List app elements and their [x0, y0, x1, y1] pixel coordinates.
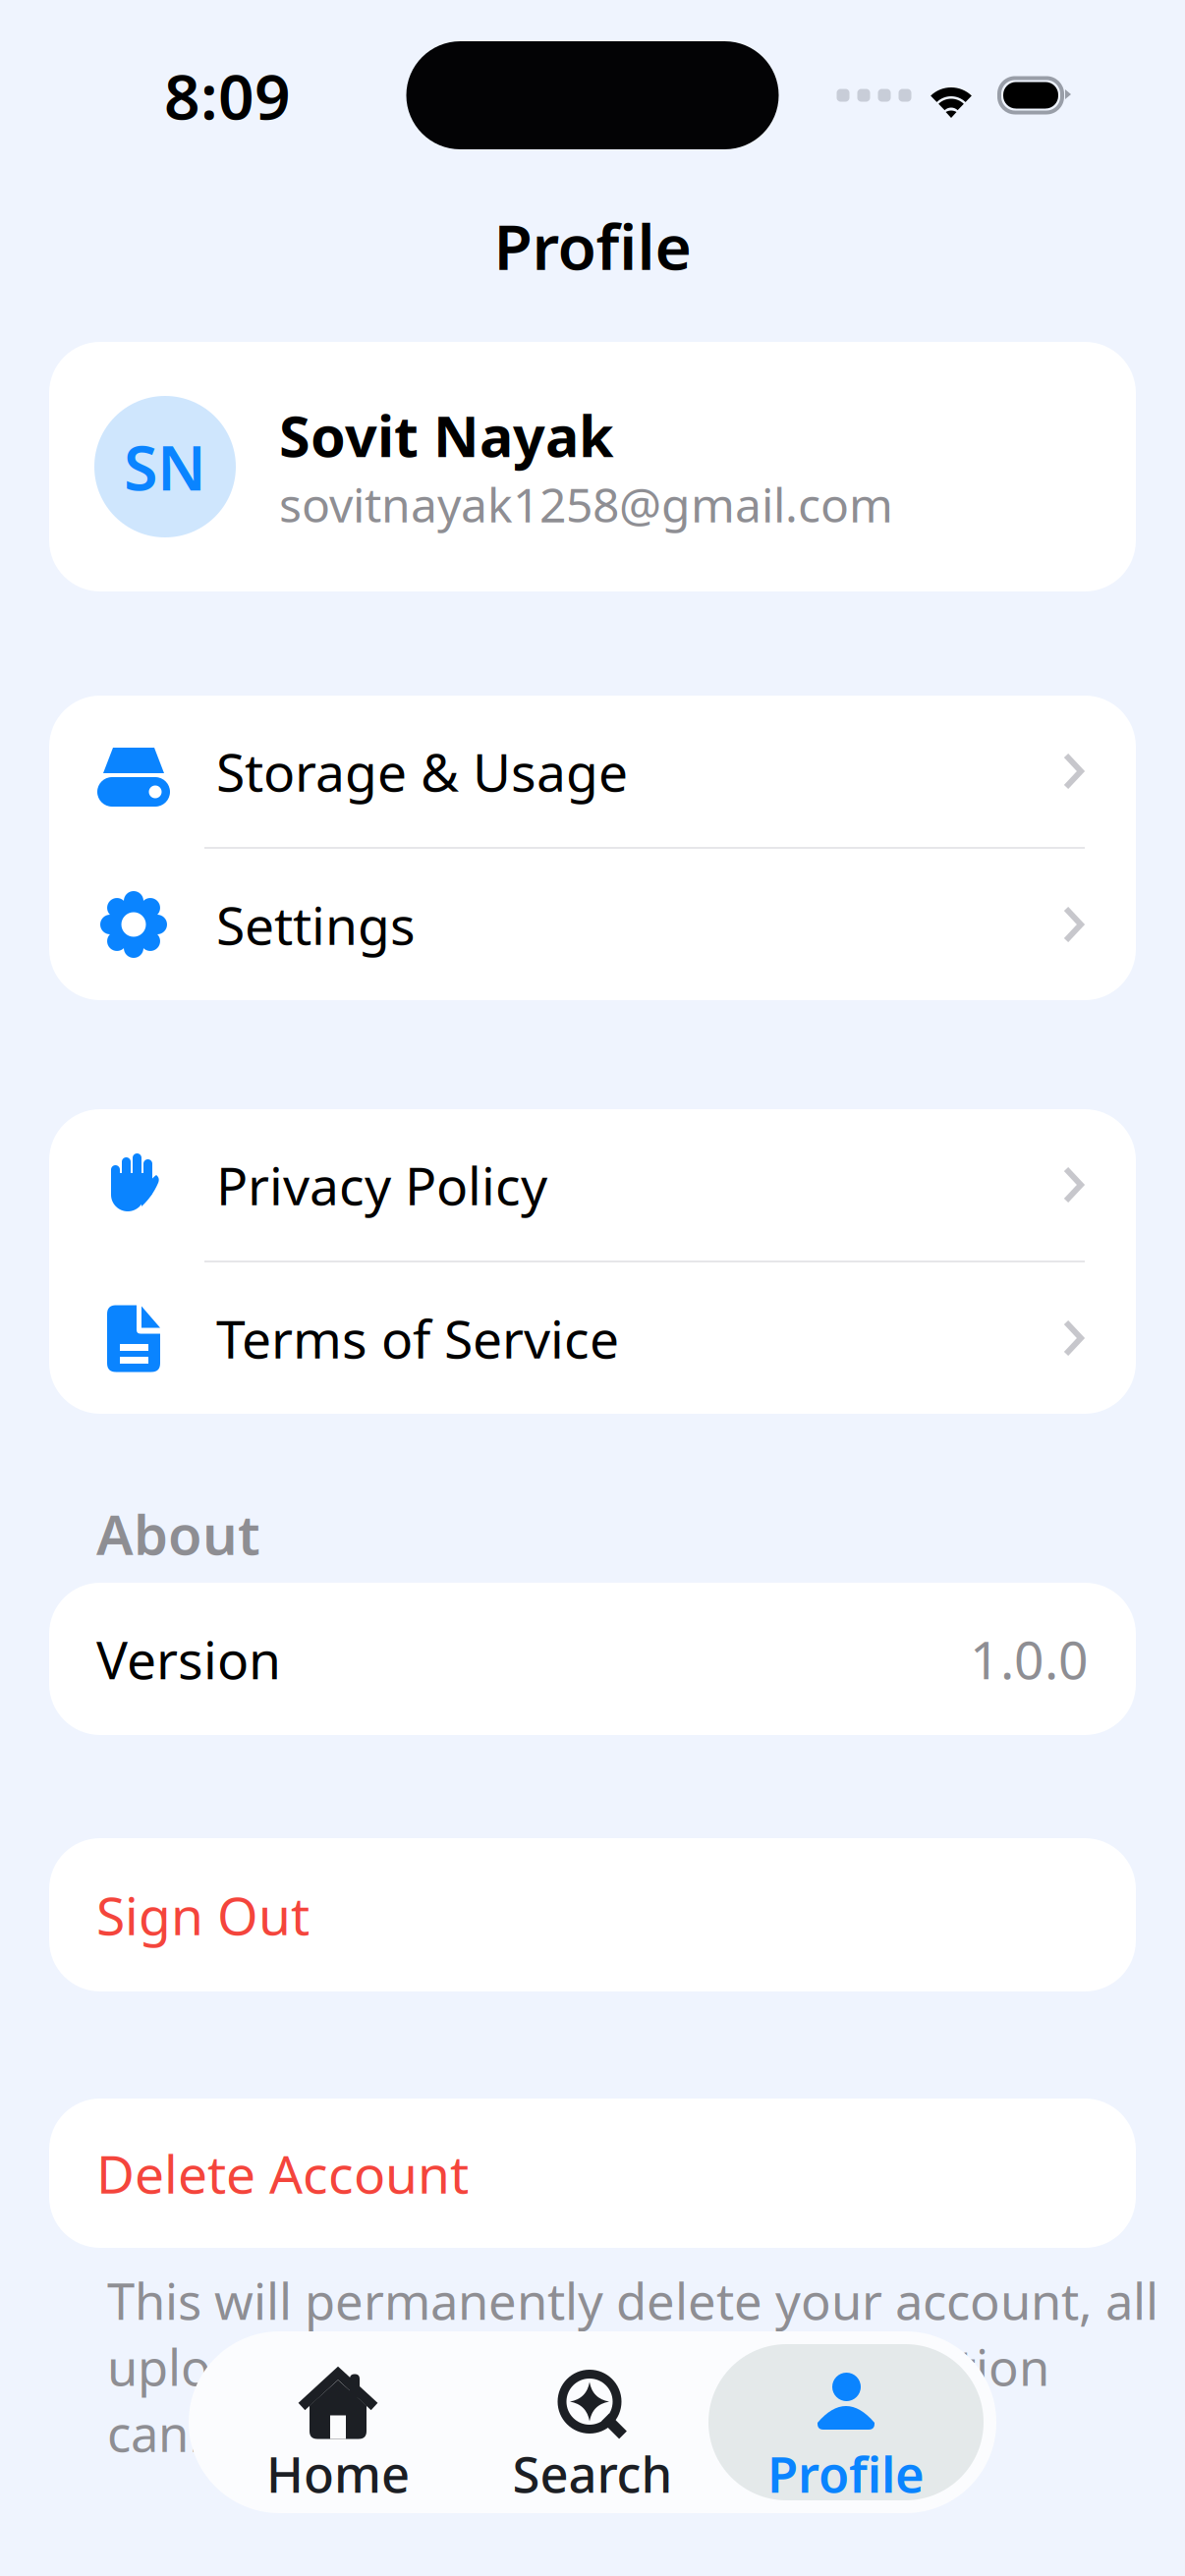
staticText: Settings — [216, 890, 416, 959]
staticText: sovitnayak1258@gmail.com — [279, 473, 893, 535]
button[interactable]: Search — [455, 2344, 730, 2500]
staticText: Profile — [494, 204, 691, 287]
staticText: Version — [96, 1624, 281, 1694]
button[interactable]: Sign Out — [49, 1838, 1136, 1991]
button[interactable]: Profile — [708, 2344, 984, 2500]
button[interactable]: Storage & Usage — [49, 696, 1136, 847]
staticText: Storage & Usage — [216, 736, 628, 806]
staticText: 8:09 — [164, 54, 291, 137]
staticText: Privacy Policy — [216, 1150, 547, 1220]
staticText: This will permanently delete your accoun… — [107, 2268, 1158, 2466]
staticText: 1.0.0 — [970, 1624, 1089, 1694]
button[interactable]: Privacy Policy — [49, 1109, 1136, 1260]
button[interactable]: Settings — [49, 849, 1136, 1000]
staticText: Sovit Nayak — [279, 398, 614, 473]
staticText: Delete Account — [96, 2138, 469, 2208]
staticText: Search — [512, 2440, 673, 2506]
staticText: SN — [124, 426, 206, 508]
staticText: Terms of Service — [216, 1303, 619, 1373]
staticText: Sign Out — [96, 1880, 310, 1950]
staticText: Profile — [767, 2440, 925, 2506]
button[interactable]: Delete Account — [49, 2099, 1136, 2248]
staticText: About — [96, 1497, 260, 1570]
staticText: Home — [266, 2440, 410, 2506]
button[interactable]: Terms of Service — [49, 1262, 1136, 1414]
button[interactable]: Home — [200, 2344, 476, 2500]
